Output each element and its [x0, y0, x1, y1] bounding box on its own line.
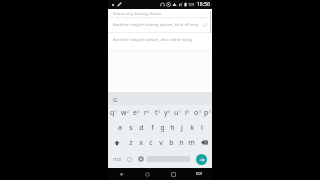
staticText: s: [129, 123, 133, 133]
staticText: p: [204, 108, 209, 118]
button[interactable]: Backspace: [196, 135, 212, 150]
staticText: Another longish boring option, kind of l…: [113, 22, 202, 28]
staticText: e: [133, 108, 137, 118]
staticText: x: [139, 138, 143, 148]
staticText: z: [129, 138, 133, 148]
staticText: 0: [209, 109, 211, 114]
staticText: c: [149, 138, 153, 148]
staticText: 8: [187, 109, 189, 114]
staticText: 4: [147, 109, 149, 114]
button[interactable]: j: [177, 120, 187, 135]
button[interactable]: q: [108, 105, 119, 120]
staticText: 3: [137, 109, 139, 114]
button[interactable]: f: [147, 120, 157, 135]
button[interactable]: Another longish boring option, kind of l…: [108, 18, 212, 32]
button[interactable]: Back: [108, 168, 134, 180]
button[interactable]: m: [186, 135, 196, 150]
button[interactable]: c: [146, 135, 156, 150]
button[interactable]: r: [141, 105, 152, 120]
button[interactable]: z: [125, 135, 136, 150]
button[interactable]: Voice input: [135, 150, 146, 168]
staticText: t: [155, 108, 158, 118]
button[interactable]: u: [172, 105, 182, 120]
button[interactable]: x: [136, 135, 146, 150]
button[interactable]: i: [182, 105, 192, 120]
button[interactable]: o: [192, 105, 202, 120]
button[interactable]: Hide keyboard: [186, 168, 212, 180]
staticText: u: [174, 108, 179, 118]
staticText: d: [139, 123, 144, 133]
button[interactable]: Home: [134, 168, 160, 180]
button[interactable]: g: [157, 120, 167, 135]
button[interactable]: t: [152, 105, 162, 120]
button[interactable]: y: [162, 105, 172, 120]
staticText: y: [164, 108, 168, 118]
button[interactable]: h: [167, 120, 177, 135]
staticText: Some very boring choice: [113, 11, 208, 17]
button[interactable]: l: [197, 120, 207, 135]
button[interactable]: s: [125, 120, 136, 135]
staticText: 1: [115, 109, 117, 114]
button[interactable]: k: [187, 120, 197, 135]
button[interactable]: Emoji: [124, 150, 135, 168]
button[interactable]: ?123: [108, 150, 124, 168]
staticText: w: [121, 108, 127, 118]
staticText: 9: [199, 109, 201, 114]
staticText: 6: [168, 109, 170, 114]
button[interactable]: d: [136, 120, 147, 135]
button[interactable]: Recent apps: [160, 168, 186, 180]
staticText: 5: [158, 109, 160, 114]
button[interactable]: Another longish option, also rather long: [108, 33, 212, 47]
staticText: m: [188, 138, 195, 148]
staticText: a: [118, 123, 122, 133]
button[interactable]: n: [176, 135, 186, 150]
staticText: o: [194, 108, 199, 118]
staticText: l: [201, 123, 203, 133]
staticText: g: [160, 123, 165, 133]
button[interactable]: p: [202, 105, 212, 120]
button[interactable]: w: [119, 105, 130, 120]
other: Selected: [202, 22, 208, 28]
staticText: 16:56: [197, 1, 210, 8]
staticText: j: [181, 123, 183, 133]
staticText: ?123: [113, 157, 121, 162]
button[interactable]: Enter: [196, 154, 207, 165]
staticText: n: [179, 138, 184, 148]
staticText: i: [185, 108, 187, 118]
staticText: h: [170, 123, 175, 133]
button[interactable]: a: [114, 120, 125, 135]
button[interactable]: b: [166, 135, 176, 150]
staticText: 2: [127, 109, 129, 114]
button[interactable]: Shift: [108, 135, 125, 150]
staticText: f: [151, 123, 154, 133]
staticText: 7: [179, 109, 181, 114]
button[interactable]: Some very boring choice: [108, 9, 212, 17]
staticText: r: [144, 108, 147, 118]
button[interactable]: v: [156, 135, 166, 150]
staticText: 101: [188, 2, 195, 7]
button[interactable]: e: [130, 105, 141, 120]
staticText: Another longish option, also rather long: [113, 37, 208, 43]
staticText: k: [190, 123, 194, 133]
button[interactable]: Google search: [112, 96, 118, 102]
staticText: v: [159, 138, 163, 148]
staticText: b: [169, 138, 174, 148]
staticText: G: [113, 96, 118, 102]
staticText: q: [110, 108, 115, 118]
